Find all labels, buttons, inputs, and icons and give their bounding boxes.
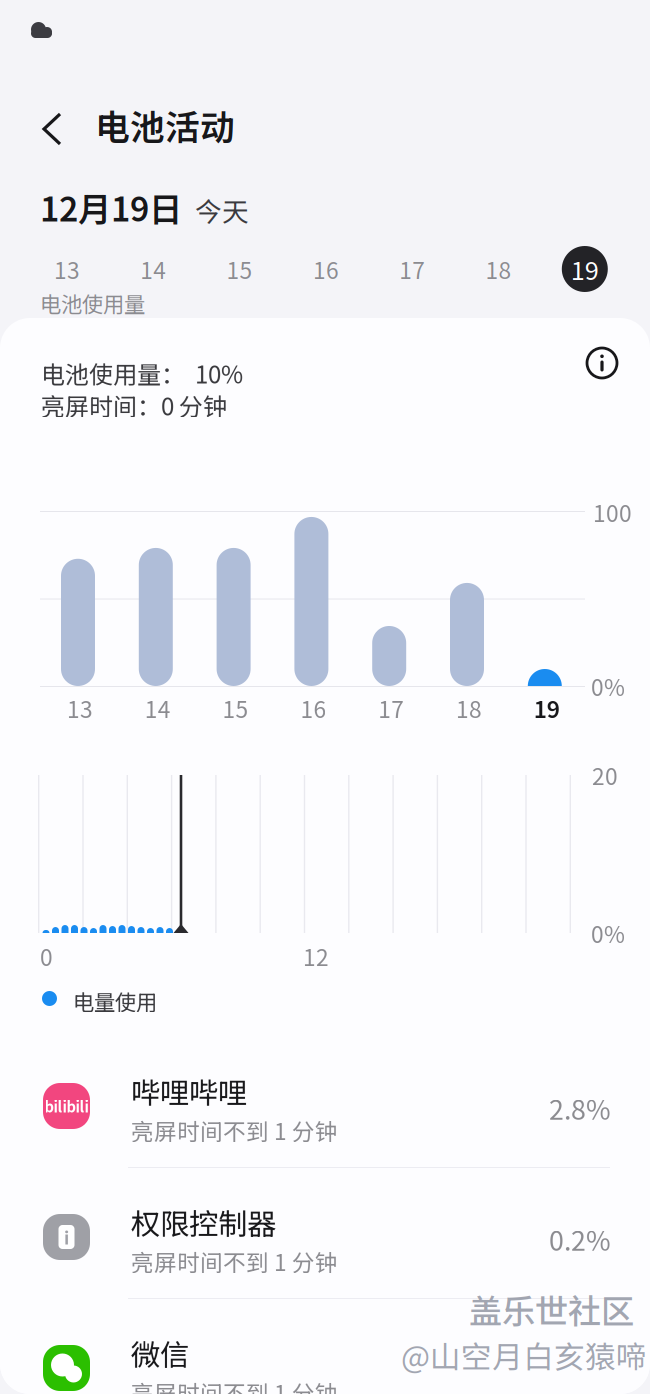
staticText: 0 <box>40 940 53 972</box>
button[interactable]: 18 <box>459 242 537 296</box>
button[interactable]: Info <box>0 318 36 354</box>
staticText: 16 <box>313 253 339 285</box>
staticText: 0% <box>591 917 625 949</box>
button[interactable]: 微信 <box>0 1299 650 1394</box>
button[interactable]: 19 <box>546 242 624 296</box>
staticText: 13 <box>54 253 80 285</box>
staticText: 13 <box>67 692 93 724</box>
staticText: 亮屏时间不到 1 分钟 <box>131 1245 338 1277</box>
staticText: 18 <box>485 253 511 285</box>
staticText: i <box>64 1224 69 1250</box>
staticText: 12 <box>303 940 329 972</box>
staticText: 电池使用量 <box>40 288 145 318</box>
staticText: 电量使用 <box>73 986 157 1016</box>
button[interactable]: 13 <box>28 242 106 296</box>
staticText: 18 <box>456 692 482 724</box>
staticText: 2.8% <box>549 1089 611 1127</box>
button[interactable]: 16 <box>287 242 365 296</box>
button[interactable]: Back <box>0 0 74 58</box>
staticText: 15 <box>227 253 253 285</box>
staticText: 14 <box>140 253 166 285</box>
staticText: 亮屏时间：0 分钟 <box>41 388 227 422</box>
staticText: 亮屏时间不到 1 分钟 <box>131 1114 338 1146</box>
staticText: 20 <box>592 759 618 791</box>
staticText: 亮屏时间不到 1 分钟 <box>131 1376 338 1394</box>
staticText: 盖乐世社区 <box>469 1285 634 1333</box>
button[interactable]: 14 <box>114 242 192 296</box>
staticText: 19 <box>571 251 599 287</box>
staticText: 0.2% <box>549 1220 611 1258</box>
staticText: 12月19日 <box>40 183 182 231</box>
staticText: 17 <box>378 692 404 724</box>
staticText: 16 <box>300 692 326 724</box>
staticText: 17 <box>399 253 425 285</box>
staticText: 微信 <box>131 1332 189 1374</box>
button[interactable]: bilibili <box>0 1037 650 1167</box>
staticText: 0% <box>591 670 625 702</box>
staticText: 19 <box>534 692 560 724</box>
staticText: 电池使用量： 10% <box>41 356 243 390</box>
staticText: 100 <box>593 496 632 528</box>
button[interactable]: 17 <box>373 242 451 296</box>
staticText: 15 <box>223 692 249 724</box>
staticText: 14 <box>145 692 171 724</box>
button[interactable]: i <box>0 1168 650 1298</box>
staticText: bilibili <box>44 1095 88 1117</box>
staticText: 权限控制器 <box>131 1201 276 1243</box>
button[interactable]: 15 <box>201 242 279 296</box>
staticText: @山空月白亥猿啼 <box>401 1333 647 1377</box>
staticText: 电池活动 <box>95 100 235 150</box>
staticText: 哔哩哔哩 <box>131 1070 247 1112</box>
staticText: 今天 <box>195 191 249 229</box>
